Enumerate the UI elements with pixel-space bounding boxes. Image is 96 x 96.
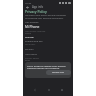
staticText: Email	[25, 59, 71, 62]
staticText: Mi Phone	[25, 25, 71, 29]
staticText: Contact details	[25, 57, 71, 60]
button[interactable]: Navigate up	[24, 4, 30, 10]
staticText: Last updated	[25, 21, 71, 24]
button[interactable]: Review now	[46, 70, 71, 75]
staticText: Review now	[52, 71, 65, 74]
staticText: to protecting your personal information.	[25, 17, 71, 20]
button[interactable]: Back	[32, 87, 37, 92]
staticText: Security	[25, 48, 71, 51]
staticText: Device	[25, 32, 71, 35]
staticText: Your rights	[25, 53, 71, 56]
staticText: Information collected	[25, 30, 71, 33]
staticText: Storage	[25, 35, 71, 38]
button[interactable]: Home	[46, 87, 51, 92]
staticText: App info	[32, 5, 78, 9]
staticText: Privacy Policy	[25, 9, 71, 14]
staticText: Don't forget to review your privacy sett…	[27, 64, 69, 70]
staticText: Third party	[25, 43, 71, 46]
staticText: 10:34	[25, 1, 71, 4]
button[interactable]: Recent apps	[59, 87, 64, 92]
staticText: Sharing and use	[25, 40, 71, 43]
staticText: We respect your privacy and are committe…	[25, 14, 71, 17]
